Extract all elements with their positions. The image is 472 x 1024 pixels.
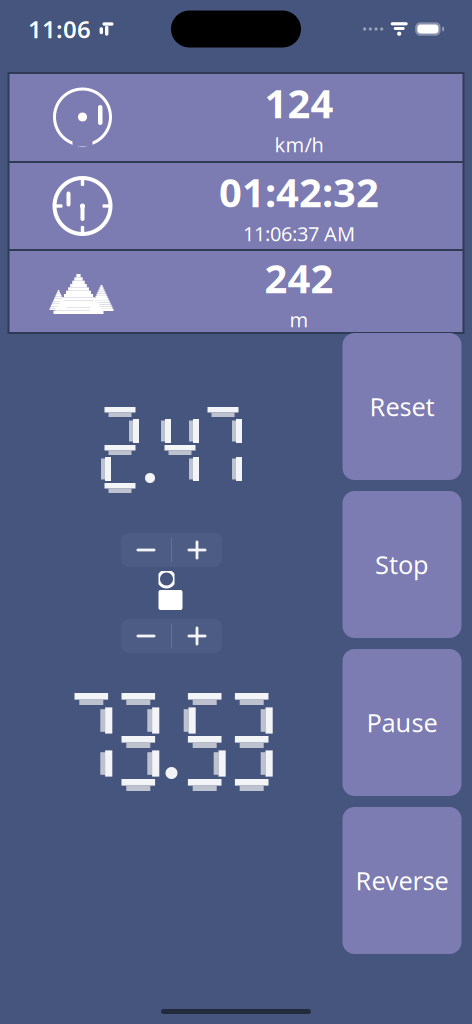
- button[interactable]: Decrease: [121, 533, 171, 567]
- staticText: m: [289, 306, 308, 333]
- staticText: Stop: [375, 548, 429, 581]
- staticText: 242: [264, 251, 333, 304]
- button[interactable]: Reset: [342, 333, 461, 480]
- button[interactable]: Increase: [172, 619, 222, 653]
- staticText: 124: [264, 76, 333, 129]
- button[interactable]: Stop: [342, 491, 461, 638]
- staticText: Reverse: [355, 864, 448, 897]
- button[interactable]: Decrease: [121, 619, 171, 653]
- staticText: 11:06:37 AM: [243, 220, 355, 247]
- staticText: Reset: [369, 390, 434, 423]
- staticText: Pause: [366, 706, 437, 739]
- button[interactable]: Increase: [172, 533, 222, 567]
- button[interactable]: Pause: [342, 649, 461, 796]
- staticText: 11:06: [28, 13, 91, 45]
- button[interactable]: Reverse: [342, 807, 461, 954]
- staticText: km/h: [274, 131, 323, 158]
- staticText: 01:42:32: [219, 165, 379, 218]
